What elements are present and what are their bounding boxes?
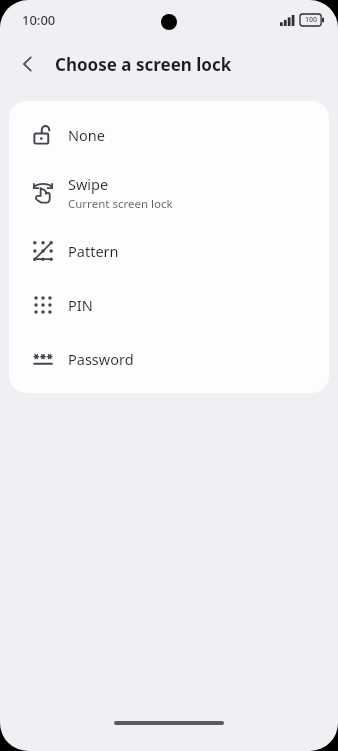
button[interactable]: Pattern xyxy=(9,224,329,278)
button[interactable]: Back xyxy=(8,44,48,84)
staticText: Pattern xyxy=(68,241,119,261)
staticText: Choose a screen lock xyxy=(55,53,232,76)
staticText: Password xyxy=(68,349,134,369)
staticText: 100 xyxy=(305,15,318,25)
button[interactable]: None xyxy=(9,108,329,162)
staticText: 10:00 xyxy=(22,11,56,29)
staticText: Swipe xyxy=(68,174,109,194)
button[interactable]: Swipe xyxy=(9,162,329,224)
button[interactable]: PIN xyxy=(9,278,329,332)
staticText: None xyxy=(68,125,105,145)
staticText: Current screen lock xyxy=(68,196,173,212)
button[interactable]: Password xyxy=(9,332,329,386)
staticText: PIN xyxy=(68,295,93,315)
